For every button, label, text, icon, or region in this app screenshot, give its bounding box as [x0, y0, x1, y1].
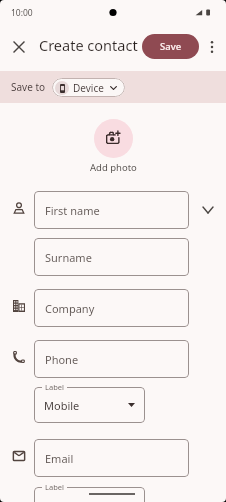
staticText: Create contact: [39, 35, 138, 55]
staticText: Surname: [45, 250, 92, 265]
staticText: Add photo: [90, 161, 137, 174]
button[interactable]: Expand name fields: [196, 198, 219, 221]
staticText: Company: [45, 301, 95, 316]
button[interactable]: Phone: [34, 340, 189, 378]
button[interactable]: Company: [34, 289, 189, 327]
staticText: Mobile: [44, 398, 80, 413]
button[interactable]: Mobile: [34, 387, 145, 423]
staticText: Save to: [11, 80, 46, 94]
button[interactable]: Email: [34, 439, 189, 477]
button[interactable]: More options: [200, 35, 223, 58]
button[interactable]: Device: [52, 78, 125, 97]
staticText: Save: [160, 40, 182, 53]
button[interactable]: Save: [142, 34, 199, 59]
staticText: Device: [73, 81, 104, 95]
button[interactable]: First name: [34, 191, 189, 229]
staticText: Label: [45, 482, 64, 492]
button[interactable]: Add photo: [94, 119, 133, 158]
staticText: Phone: [45, 352, 79, 367]
staticText: Label: [45, 382, 64, 392]
staticText: Email: [45, 451, 74, 466]
button[interactable]: Close: [7, 35, 30, 58]
button[interactable]: Surname: [34, 238, 189, 276]
staticText: First name: [45, 203, 100, 218]
staticText: 10:00: [11, 7, 33, 19]
button[interactable]: Home: [34, 487, 145, 502]
